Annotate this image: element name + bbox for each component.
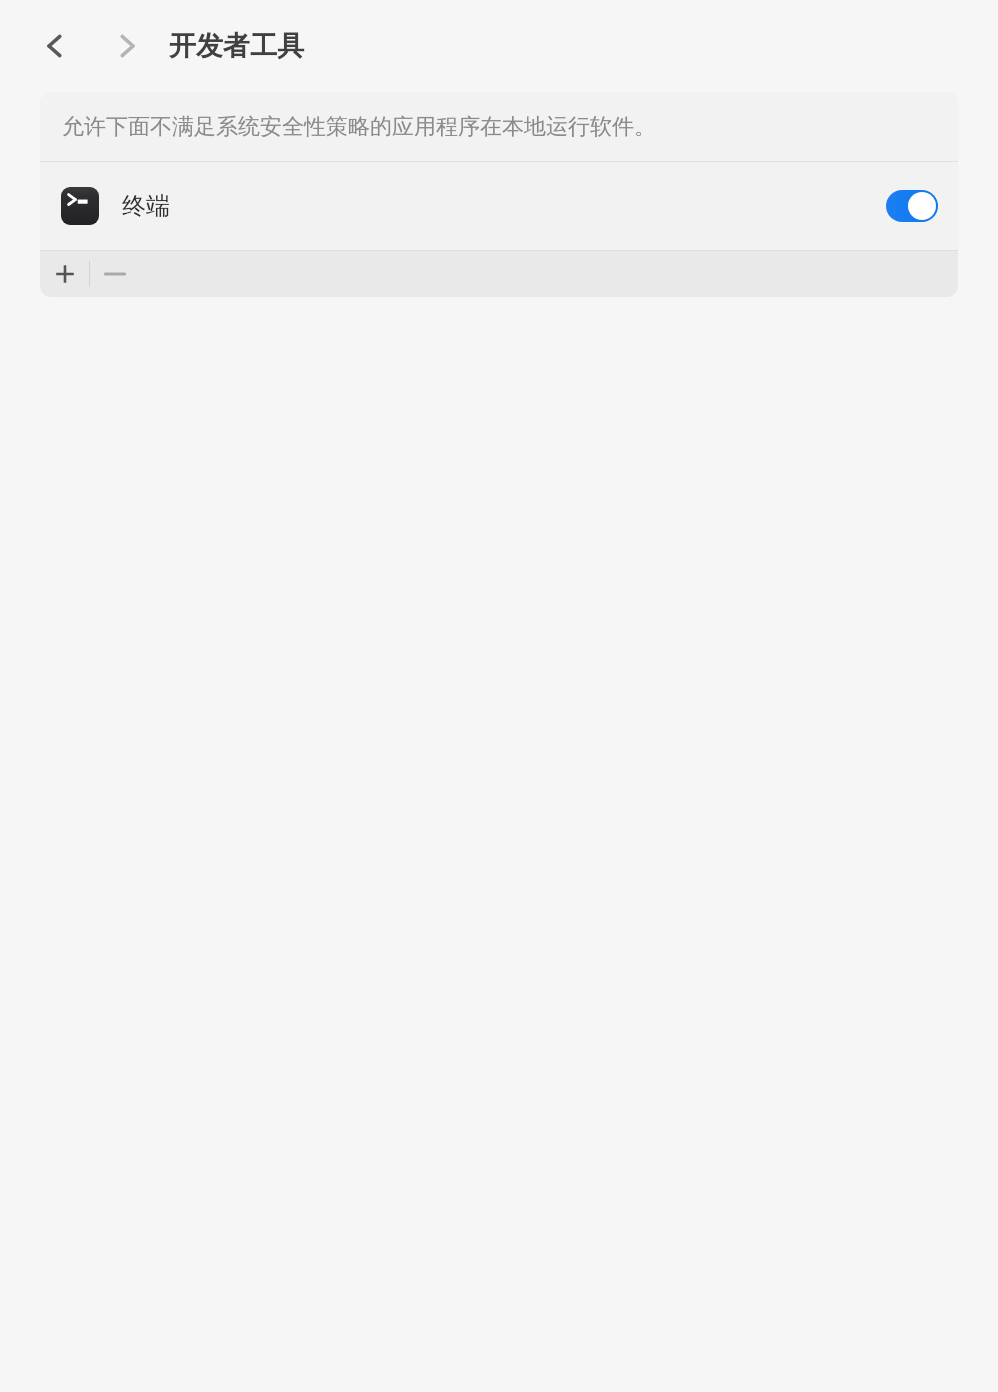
staticText: 开发者工具 [169, 29, 304, 63]
button[interactable]: 终端 开关 [886, 190, 938, 222]
staticText: 允许下面不满足系统安全性策略的应用程序在本地运行软件。 [62, 113, 656, 141]
button[interactable]: Remove [90, 251, 139, 297]
button[interactable]: 终端 [40, 162, 958, 250]
staticText: 终端 [122, 191, 170, 221]
button[interactable]: Forward [105, 24, 149, 68]
button[interactable]: Add [40, 251, 89, 297]
button[interactable]: Back [33, 24, 77, 68]
